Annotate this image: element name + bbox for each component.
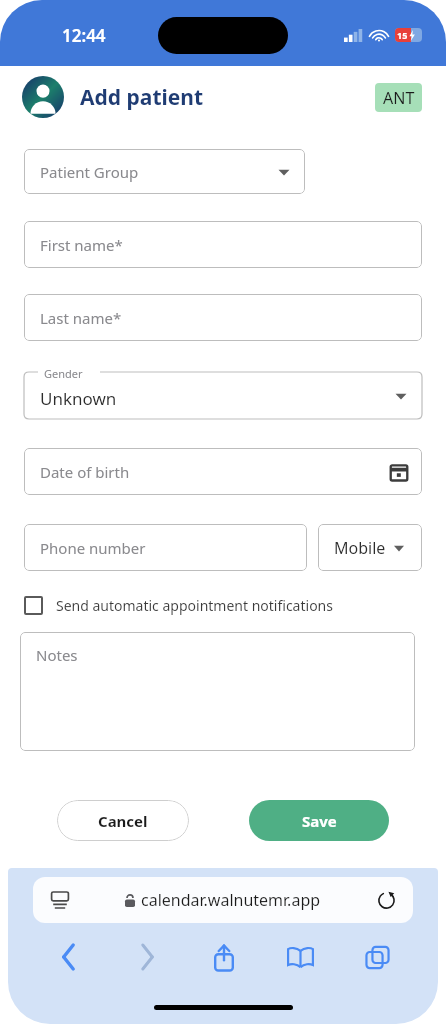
staticText: First name*	[40, 235, 123, 255]
staticText: calendar.walnutemr.app	[141, 889, 321, 911]
button[interactable]: Mobile	[318, 524, 422, 571]
staticText: Phone number	[40, 538, 146, 558]
staticText: 12:44	[62, 24, 106, 47]
button[interactable]: Back	[30, 933, 108, 981]
button[interactable]: Page settings	[33, 877, 413, 923]
staticText: 15	[397, 29, 408, 41]
button[interactable]: Send automatic appointment notifications	[24, 596, 333, 615]
button[interactable]: Tabs	[339, 933, 416, 981]
other: Reload	[375, 889, 397, 911]
button[interactable]: Bookmarks	[262, 933, 339, 981]
staticText: Last name*	[40, 308, 122, 328]
button[interactable]: Forward	[108, 933, 185, 981]
staticText: Cancel	[98, 811, 148, 831]
staticText: ANT	[383, 87, 415, 109]
staticText: Gender	[44, 366, 83, 381]
button[interactable]: Date of birth	[24, 448, 422, 495]
button[interactable]: Cancel	[57, 800, 189, 841]
button[interactable]: ANT	[375, 83, 422, 112]
button[interactable]: Unknown	[24, 372, 422, 419]
button[interactable]: Save	[249, 800, 389, 841]
button[interactable]: Last name*	[24, 294, 422, 341]
button[interactable]: Share	[185, 933, 262, 981]
button[interactable]: Notes	[20, 632, 415, 751]
staticText: Notes	[36, 645, 78, 665]
staticText: Send automatic appointment notifications	[56, 596, 333, 615]
button[interactable]: Patient Group	[24, 149, 305, 194]
other: Page settings	[49, 889, 71, 911]
staticText: Save	[302, 811, 337, 831]
staticText: Add patient	[80, 83, 204, 112]
button[interactable]: Profile	[22, 76, 64, 118]
staticText: Patient Group	[40, 162, 139, 182]
button[interactable]: First name*	[24, 221, 422, 268]
staticText: Mobile	[334, 537, 386, 559]
staticText: Unknown	[40, 387, 117, 410]
button[interactable]: Phone number	[24, 524, 307, 571]
staticText: Date of birth	[40, 462, 130, 482]
